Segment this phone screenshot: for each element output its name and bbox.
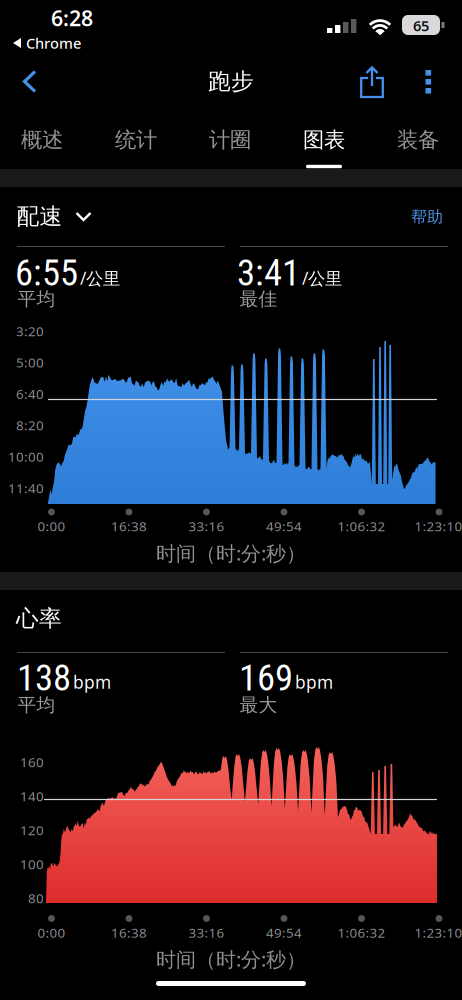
staticText: 120 <box>20 821 44 839</box>
staticText: /公里 <box>80 266 120 289</box>
staticText: 169 <box>239 656 293 699</box>
staticText: 跑步 <box>208 68 254 95</box>
staticText: 6:40 <box>16 385 44 403</box>
staticText: 时间（时:分:秒） <box>156 540 306 566</box>
staticText: 16:38 <box>111 517 147 535</box>
button[interactable]: 图表 <box>279 116 369 164</box>
staticText: 100 <box>20 855 44 873</box>
staticText: 8:20 <box>16 416 44 434</box>
staticText: bpm <box>73 670 111 693</box>
staticText: 16:38 <box>111 924 147 941</box>
staticText: 80 <box>28 889 44 907</box>
staticText: 49:54 <box>266 924 302 941</box>
button[interactable]: 装备 <box>373 116 462 164</box>
staticText: 平均 <box>17 693 55 716</box>
staticText: 图表 <box>303 127 345 153</box>
button[interactable]: 概述 <box>0 116 87 164</box>
staticText: 11:40 <box>8 479 44 497</box>
staticText: Chrome <box>26 33 81 53</box>
button[interactable]: 配速 <box>16 199 91 233</box>
staticText: 33:16 <box>188 517 224 535</box>
staticText: 平均 <box>17 287 55 310</box>
staticText: 帮助 <box>411 207 443 227</box>
staticText: 65 <box>413 16 429 35</box>
staticText: 最佳 <box>239 287 277 310</box>
staticText: 3:20 <box>16 322 44 340</box>
staticText: 5:00 <box>16 353 44 371</box>
button[interactable]: Back to Chrome <box>4 34 90 52</box>
staticText: 138 <box>17 656 71 699</box>
staticText: 统计 <box>115 127 157 153</box>
staticText: 140 <box>20 787 44 805</box>
staticText: 160 <box>20 753 44 771</box>
button[interactable]: 帮助 <box>399 202 455 232</box>
button[interactable]: Back <box>22 70 40 93</box>
staticText: bpm <box>295 670 333 693</box>
staticText: 1:06:32 <box>337 924 385 941</box>
staticText: /公里 <box>302 266 342 289</box>
staticText: 6:55 <box>15 251 78 294</box>
staticText: 10:00 <box>8 448 44 465</box>
staticText: 6:28 <box>51 4 93 32</box>
staticText: 1:06:32 <box>337 517 385 535</box>
staticText: 0:00 <box>37 517 65 535</box>
staticText: 计圈 <box>209 127 251 153</box>
staticText: 49:54 <box>266 517 302 535</box>
staticText: 33:16 <box>188 924 224 941</box>
button[interactable]: 计圈 <box>185 116 275 164</box>
button[interactable]: More <box>425 70 431 94</box>
button[interactable]: Share <box>360 66 384 98</box>
staticText: 1:23:10 <box>414 517 462 535</box>
staticText: 1:23:10 <box>414 924 462 941</box>
staticText: 0:00 <box>37 924 65 941</box>
staticText: 装备 <box>397 127 439 153</box>
staticText: 心率 <box>16 605 62 632</box>
staticText: 配速 <box>16 203 62 230</box>
staticText: 3:41 <box>237 251 300 294</box>
staticText: 最大 <box>239 693 277 716</box>
button[interactable]: 统计 <box>91 116 181 164</box>
staticText: 概述 <box>21 127 63 153</box>
staticText: 时间（时:分:秒） <box>156 946 306 972</box>
